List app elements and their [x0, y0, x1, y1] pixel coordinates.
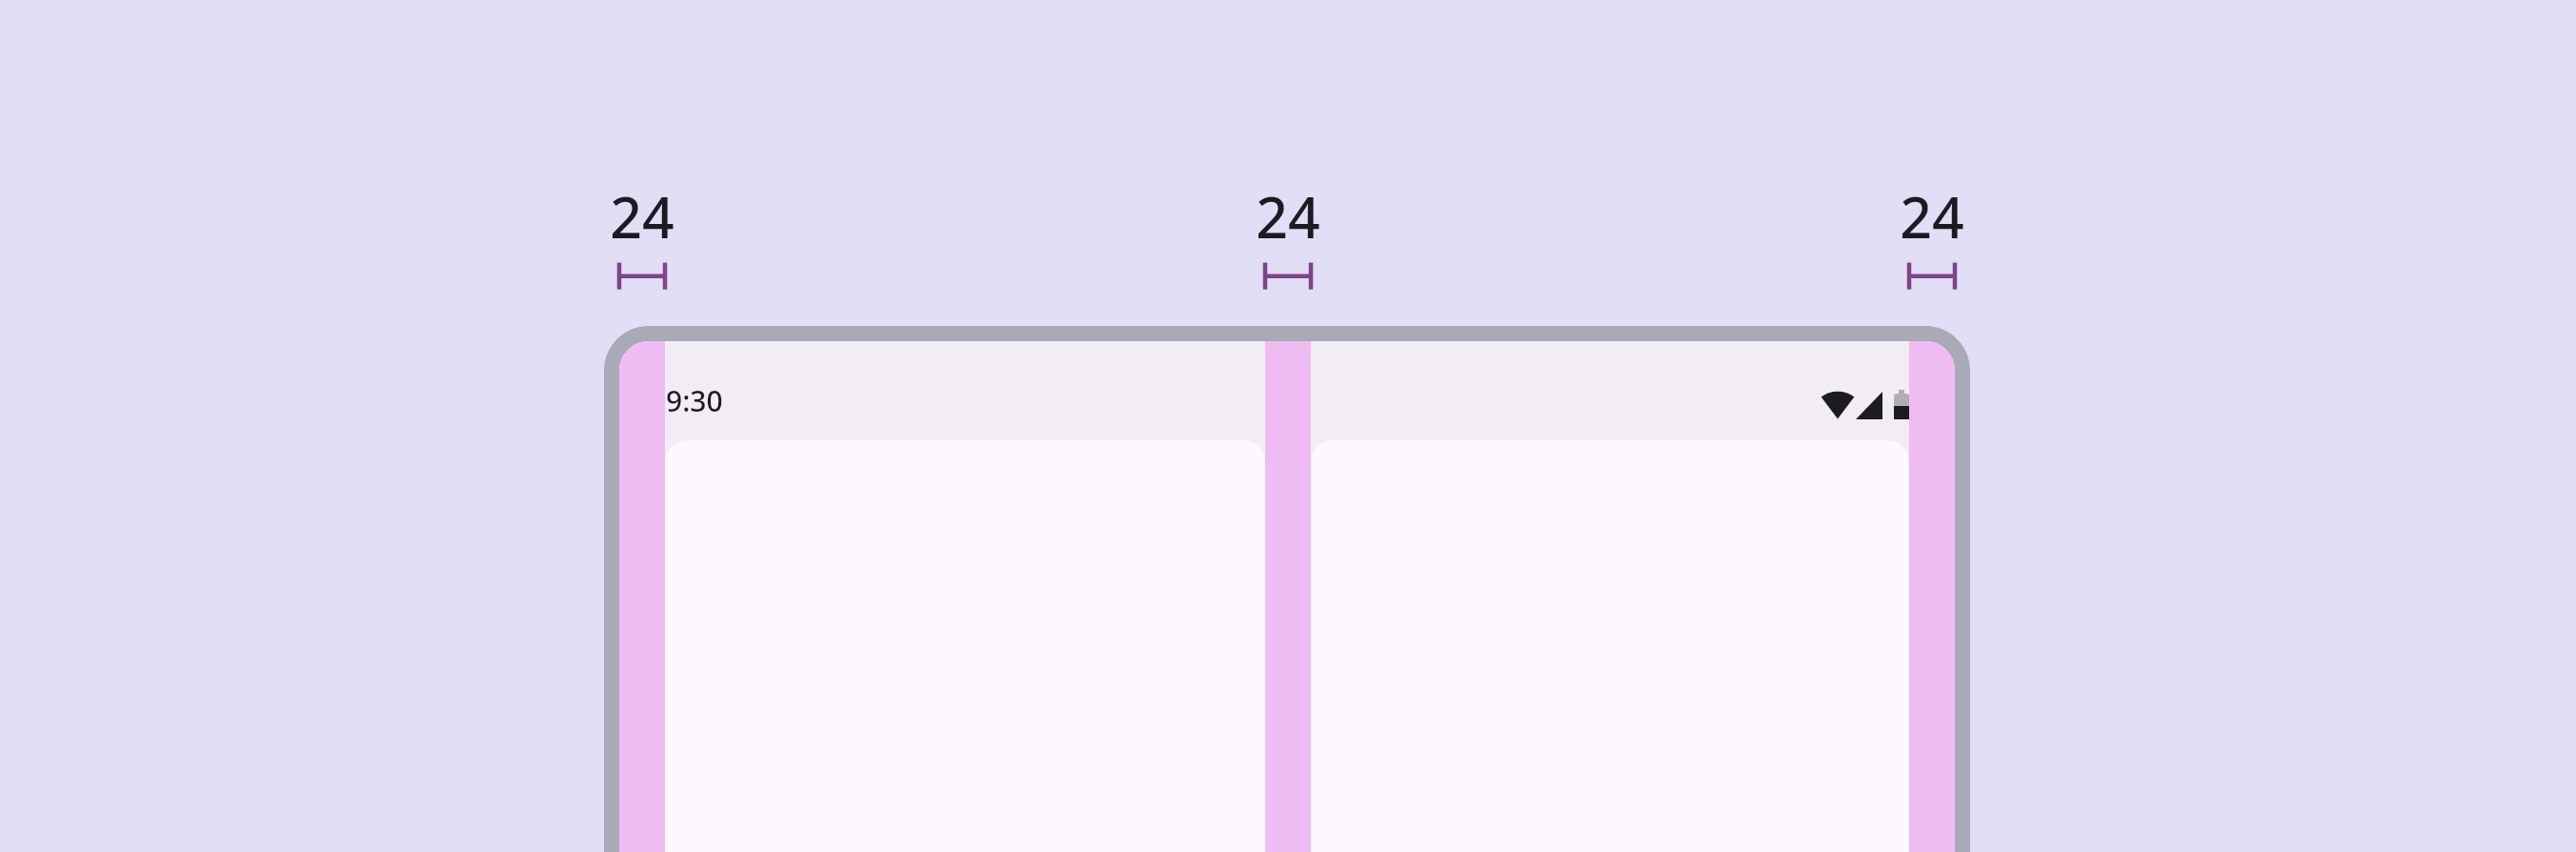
staticText: 24 — [610, 178, 674, 245]
staticText: 9:30 — [666, 381, 723, 420]
staticText: 24 — [1256, 178, 1320, 245]
button[interactable]: Cellular signal — [1856, 385, 1882, 421]
button[interactable]: Wi-Fi — [1821, 385, 1854, 421]
button[interactable]: Battery — [1892, 385, 1911, 421]
staticText: 24 — [1900, 178, 1964, 245]
